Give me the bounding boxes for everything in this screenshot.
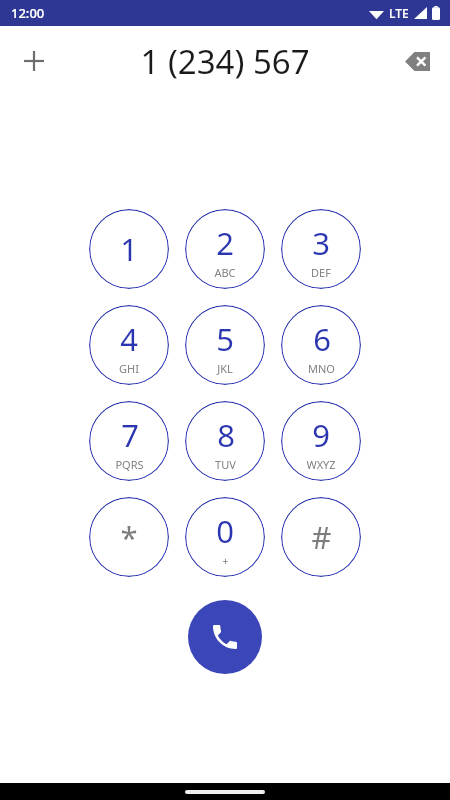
staticText: GHI (119, 361, 139, 376)
staticText: 1 (120, 228, 138, 270)
staticText: PQRS (115, 457, 144, 472)
button[interactable]: 4 (89, 305, 169, 385)
button[interactable]: 1 (89, 209, 169, 289)
button[interactable]: Call (188, 600, 262, 674)
button[interactable]: 3 (281, 209, 361, 289)
staticText: 3 (312, 222, 330, 264)
button[interactable]: 8 (185, 401, 265, 481)
button[interactable]: 5 (185, 305, 265, 385)
staticText: 4 (120, 318, 138, 360)
staticText: * (120, 516, 138, 558)
button[interactable]: # (281, 497, 361, 577)
button[interactable]: 0 (185, 497, 265, 577)
button[interactable]: Add (14, 41, 54, 81)
button[interactable]: Backspace (398, 41, 438, 81)
staticText: 5 (216, 318, 234, 360)
staticText: + (222, 553, 229, 568)
button[interactable]: 2 (185, 209, 265, 289)
button[interactable]: 7 (89, 401, 169, 481)
staticText: LTE (389, 5, 409, 21)
button[interactable]: 9 (281, 401, 361, 481)
staticText: JKL (217, 361, 233, 376)
staticText: DEF (311, 265, 331, 280)
button[interactable]: * (89, 497, 169, 577)
staticText: 12:00 (11, 4, 45, 22)
staticText: # (311, 516, 332, 558)
staticText: WXYZ (306, 457, 336, 472)
staticText: ABC (214, 265, 236, 280)
staticText: 6 (313, 318, 331, 360)
staticText: 9 (312, 414, 330, 456)
staticText: 0 (216, 510, 234, 552)
staticText: MNO (308, 361, 335, 376)
staticText: TUV (215, 457, 236, 472)
staticText: 1 (234) 567 (140, 39, 310, 84)
staticText: 7 (121, 414, 139, 456)
button[interactable]: 6 (281, 305, 361, 385)
staticText: 2 (216, 222, 234, 264)
staticText: 8 (217, 414, 235, 456)
